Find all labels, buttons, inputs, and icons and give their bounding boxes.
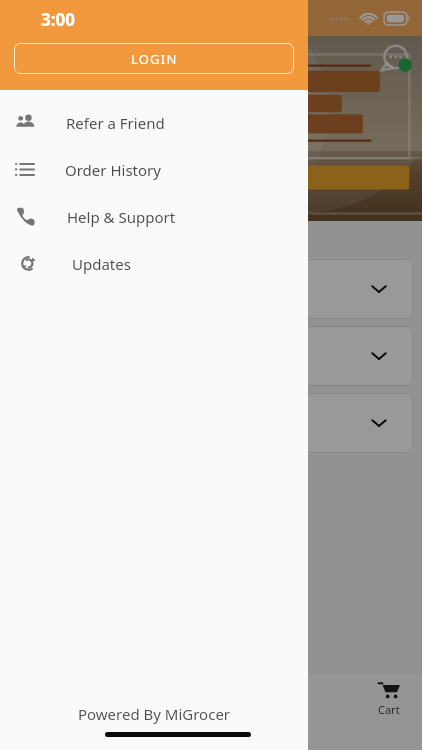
staticText: Updates (72, 254, 131, 274)
staticText: Cart (378, 702, 400, 717)
button[interactable]: Order History (0, 146, 308, 193)
staticText: 3:00 (41, 8, 75, 31)
button[interactable] (9, 393, 413, 453)
button[interactable]: Refer a Friend (0, 99, 308, 146)
button[interactable] (9, 326, 413, 386)
button[interactable]: Chat support (380, 42, 414, 76)
button[interactable]: LOGIN (14, 43, 294, 74)
button[interactable]: Help & Support (0, 193, 308, 240)
button[interactable]: Cart (356, 675, 422, 722)
button[interactable] (9, 259, 413, 319)
staticText: Help & Support (67, 207, 176, 227)
staticText: Refer a Friend (66, 113, 165, 133)
staticText: LOGIN (131, 50, 178, 68)
button[interactable]: Updates (0, 240, 308, 287)
staticText: Powered By MiGrocer (0, 704, 308, 724)
staticText: Order History (65, 160, 161, 180)
